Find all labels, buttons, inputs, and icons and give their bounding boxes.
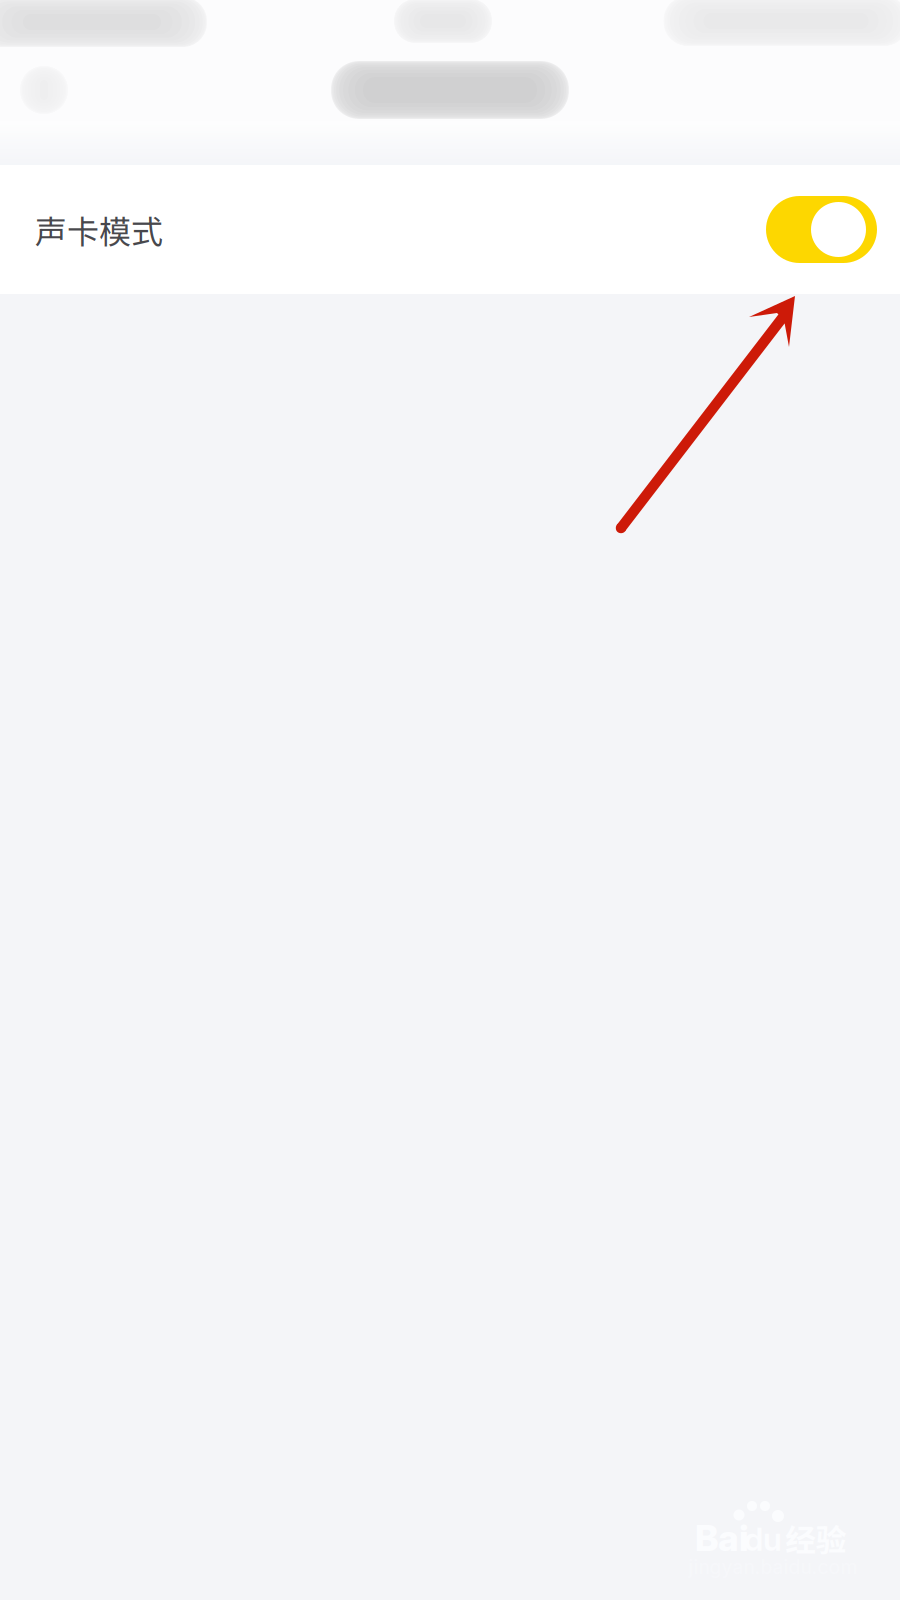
button[interactable]: 声卡模式 bbox=[0, 165, 900, 294]
staticText: Bai bbox=[695, 1516, 749, 1560]
staticText: 声卡模式 bbox=[35, 206, 163, 253]
